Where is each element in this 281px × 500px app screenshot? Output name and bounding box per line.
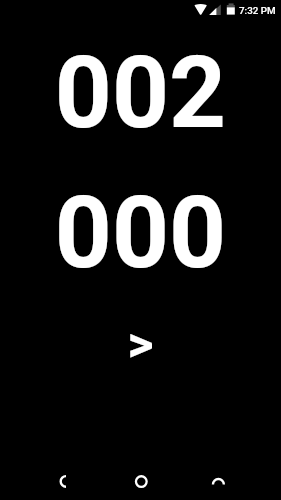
button[interactable]: Seconds 000 [0, 175, 281, 292]
staticText: 002 [0, 35, 281, 152]
button[interactable]: Start [0, 315, 281, 374]
button[interactable]: Minutes 002 [0, 35, 281, 152]
button[interactable]: Home [117, 457, 165, 500]
button[interactable]: Recents [194, 457, 242, 500]
staticText: 000 [0, 175, 281, 292]
button[interactable]: Back [42, 457, 90, 500]
staticText: 7:32 PM [239, 5, 276, 16]
staticText: > [0, 315, 281, 374]
